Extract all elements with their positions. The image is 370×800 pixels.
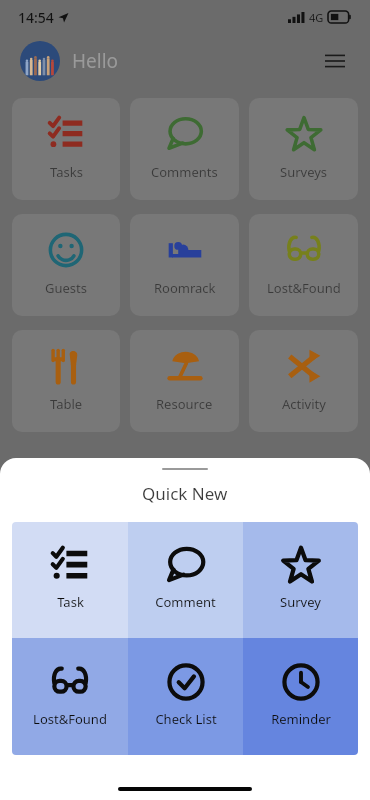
- button[interactable]: Comment: [128, 522, 243, 638]
- staticText: Surveys: [280, 163, 328, 181]
- staticText: Survey: [280, 593, 321, 611]
- button[interactable]: Activity: [249, 330, 358, 432]
- button[interactable]: Resource: [130, 330, 239, 432]
- button[interactable]: Task: [12, 522, 128, 638]
- staticText: Check List: [155, 710, 217, 728]
- staticText: Task: [57, 593, 84, 611]
- button[interactable]: Lost&Found: [12, 638, 128, 755]
- staticText: 14:54: [18, 8, 54, 27]
- staticText: Reminder: [271, 710, 331, 728]
- staticText: Table: [50, 395, 83, 413]
- staticText: 4G: [309, 10, 324, 25]
- button[interactable]: Guests: [12, 214, 120, 316]
- staticText: Lost&Found: [267, 279, 341, 297]
- button[interactable]: Profile: [20, 41, 60, 81]
- button[interactable]: Roomrack: [130, 214, 239, 316]
- button[interactable]: Reminder: [243, 638, 358, 755]
- staticText: Roomrack: [154, 279, 216, 297]
- button[interactable]: Survey: [243, 522, 358, 638]
- staticText: Tasks: [50, 163, 83, 181]
- staticText: Lost&Found: [33, 710, 107, 728]
- button[interactable]: Check List: [128, 638, 243, 755]
- button[interactable]: Menu: [320, 46, 350, 76]
- button[interactable]: Tasks: [12, 98, 120, 200]
- staticText: Guests: [45, 279, 87, 297]
- staticText: Activity: [282, 395, 326, 413]
- staticText: Resource: [156, 395, 213, 413]
- staticText: Hello: [72, 48, 119, 74]
- button[interactable]: Lost&Found: [249, 214, 358, 316]
- button[interactable]: Table: [12, 330, 120, 432]
- staticText: Comment: [155, 593, 216, 611]
- staticText: Quick New: [142, 482, 228, 505]
- staticText: Comments: [151, 163, 218, 181]
- button[interactable]: Surveys: [249, 98, 358, 200]
- button[interactable]: Comments: [130, 98, 239, 200]
